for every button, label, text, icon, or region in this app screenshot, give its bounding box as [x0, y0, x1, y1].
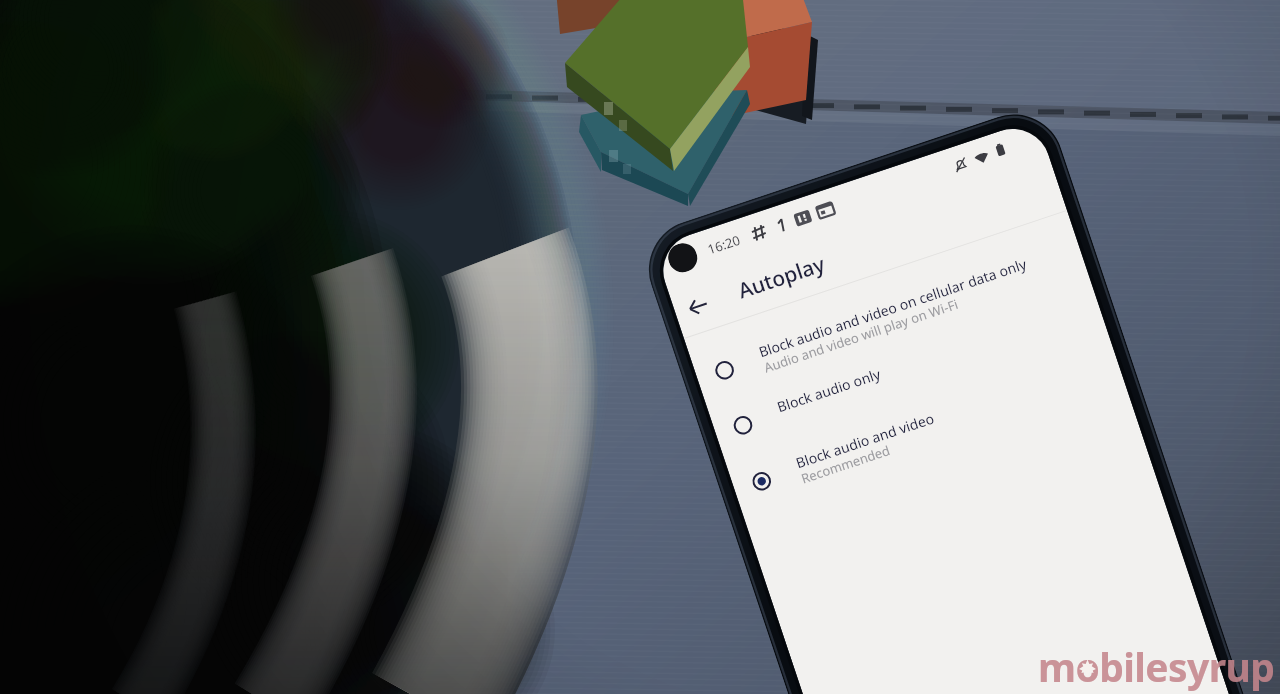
staticText: Autoplay	[734, 249, 829, 305]
staticText: Recommended	[799, 441, 893, 487]
staticText: Block audio only	[775, 364, 883, 416]
staticText: Block audio and video	[793, 408, 937, 472]
staticText: 16:20	[705, 230, 743, 258]
staticText: Audio and video will play on Wi-Fi	[762, 295, 961, 377]
button[interactable]: Back	[675, 283, 720, 329]
button[interactable]: Block audio and video	[726, 335, 1127, 516]
staticText: Block audio and video on cellular data o…	[756, 254, 1029, 361]
button[interactable]: Block audio only	[707, 279, 1108, 460]
staticText: mobilesyrup	[1038, 640, 1275, 693]
button[interactable]: Block audio and video on cellular data o…	[688, 224, 1089, 405]
